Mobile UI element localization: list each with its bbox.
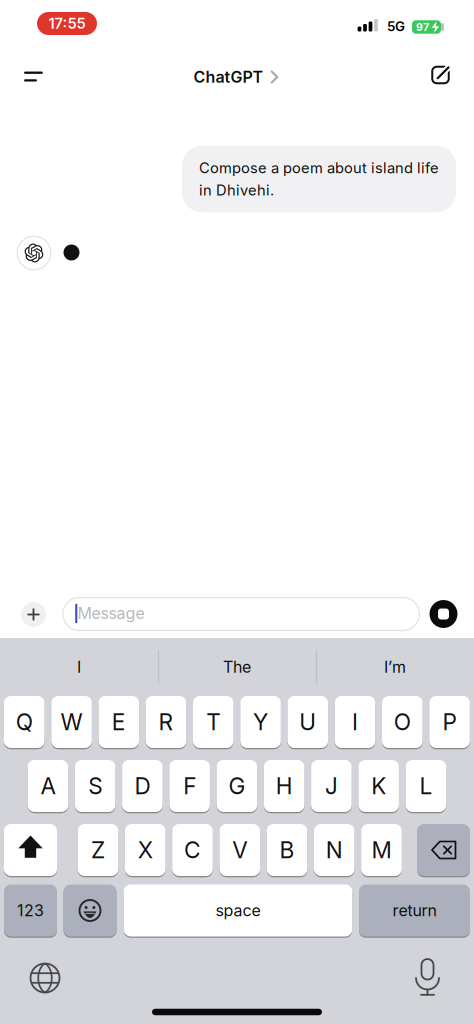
staticText: in Dhivehi. <box>199 181 274 199</box>
button[interactable]: Z <box>78 824 118 876</box>
button[interactable] <box>421 592 465 636</box>
staticText: 17:55 <box>48 15 85 32</box>
button[interactable]: F <box>169 760 210 812</box>
button[interactable]: W <box>51 696 92 748</box>
staticText: M <box>371 837 391 863</box>
button[interactable]: V <box>219 824 260 876</box>
staticText: I <box>352 709 358 735</box>
button[interactable]: A <box>28 760 68 812</box>
staticText: I’m <box>384 658 406 676</box>
staticText: L <box>419 773 432 799</box>
staticText: D <box>134 773 150 799</box>
staticText: Compose a poem about island life <box>199 159 439 176</box>
button[interactable]: Message <box>63 597 419 630</box>
button[interactable]: 123 <box>4 884 57 936</box>
button[interactable] <box>11 592 55 636</box>
staticText: space <box>215 901 260 920</box>
staticText: I <box>77 658 81 676</box>
staticText: E <box>112 709 126 735</box>
staticText: X <box>138 837 153 863</box>
staticText: A <box>40 773 55 799</box>
staticText: O <box>394 709 411 735</box>
staticText: U <box>299 709 316 735</box>
staticText: P <box>443 709 457 735</box>
staticText: Q <box>16 709 33 735</box>
button[interactable]: Q <box>4 696 45 748</box>
button[interactable]: M <box>361 824 402 876</box>
staticText: ChatGPT <box>193 68 263 86</box>
button[interactable]: return <box>359 884 470 936</box>
button[interactable]: I <box>335 696 375 748</box>
staticText: Z <box>91 837 105 863</box>
staticText: N <box>326 837 343 863</box>
button[interactable]: L <box>406 760 446 812</box>
button[interactable]: space <box>124 884 352 936</box>
button[interactable]: I’m <box>320 642 470 692</box>
button[interactable]: J <box>311 760 352 812</box>
button[interactable]: P <box>429 696 470 748</box>
staticText: The <box>223 658 251 676</box>
button[interactable]: K <box>358 760 399 812</box>
button[interactable]: O <box>382 696 423 748</box>
staticText: S <box>88 773 102 799</box>
button[interactable]: G <box>217 760 257 812</box>
staticText: F <box>183 773 196 799</box>
button[interactable]: T <box>193 696 234 748</box>
button[interactable] <box>4 824 57 876</box>
button[interactable] <box>417 824 470 876</box>
button[interactable]: D <box>122 760 163 812</box>
staticText: T <box>206 709 220 735</box>
button[interactable] <box>23 956 67 1000</box>
staticText: V <box>232 837 247 863</box>
button[interactable]: H <box>264 760 304 812</box>
staticText: B <box>279 837 294 863</box>
staticText: W <box>60 709 82 735</box>
button[interactable]: I <box>4 642 154 692</box>
button[interactable]: B <box>267 824 307 876</box>
staticText: 5G <box>387 19 405 34</box>
button[interactable]: N <box>314 824 354 876</box>
button[interactable]: U <box>287 696 328 748</box>
staticText: J <box>325 773 338 799</box>
button[interactable]: Y <box>240 696 281 748</box>
button[interactable] <box>11 54 55 98</box>
button[interactable] <box>418 53 462 97</box>
staticText: C <box>184 837 201 863</box>
button[interactable]: C <box>172 824 213 876</box>
button[interactable]: S <box>75 760 115 812</box>
staticText: Message <box>77 604 144 623</box>
button[interactable] <box>63 884 116 936</box>
button[interactable]: R <box>146 696 186 748</box>
button[interactable]: X <box>125 824 166 876</box>
staticText: Y <box>253 709 268 735</box>
staticText: return <box>392 901 436 920</box>
staticText: R <box>159 709 174 735</box>
staticText: H <box>276 773 293 799</box>
button[interactable]: E <box>98 696 139 748</box>
button[interactable] <box>405 956 449 1000</box>
staticText: G <box>228 773 245 799</box>
button[interactable]: The <box>162 642 312 692</box>
staticText: 97 <box>416 21 429 33</box>
staticText: 123 <box>17 901 44 920</box>
staticText: K <box>371 773 386 799</box>
button[interactable]: ChatGPT <box>193 55 278 99</box>
